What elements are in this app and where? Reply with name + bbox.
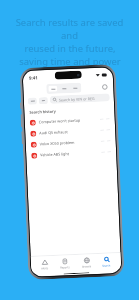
staticText: Computer won't startup <box>39 117 100 124</box>
staticText: Audi Q5 exhaust <box>39 128 100 135</box>
staticText: Alerts <box>41 266 49 270</box>
staticText: Browse <box>82 264 91 269</box>
button[interactable]: Browse <box>80 256 93 270</box>
staticText: Vehicle ABS light <box>40 150 101 157</box>
staticText: reused in the future, <box>24 42 116 55</box>
button[interactable]: Search <box>100 255 113 269</box>
button[interactable]: Segmented control <box>46 82 81 94</box>
button[interactable]: Tab 3 <box>70 85 79 91</box>
staticText: Search results are saved and <box>8 16 131 42</box>
button[interactable]: Alerts <box>39 258 51 271</box>
button[interactable]: Volvo XC60 problem <box>25 135 116 150</box>
staticText: saving time and power <box>19 55 121 68</box>
staticText: Volvo XC60 problem <box>40 139 101 146</box>
button[interactable]: Search by VIN or REG <box>50 93 110 104</box>
button[interactable]: Reports <box>58 257 72 271</box>
staticText: Reports <box>60 265 70 270</box>
staticText: Search by VIN or REG <box>59 96 95 102</box>
staticText: 9:41 <box>29 74 38 81</box>
button[interactable]: Vehicle ABS light <box>26 146 116 161</box>
button[interactable]: Notifications <box>100 82 108 91</box>
staticText: Search history <box>29 109 56 115</box>
button[interactable]: Filter All <box>39 97 48 104</box>
button[interactable]: Tab 2 <box>59 85 68 91</box>
button[interactable]: Tab 1 <box>48 86 57 92</box>
button[interactable]: Filter VIN <box>28 97 37 105</box>
button[interactable]: Audi Q5 exhaust <box>25 124 115 139</box>
staticText: Search <box>102 263 111 268</box>
button[interactable]: Computer won't startup <box>25 113 115 128</box>
